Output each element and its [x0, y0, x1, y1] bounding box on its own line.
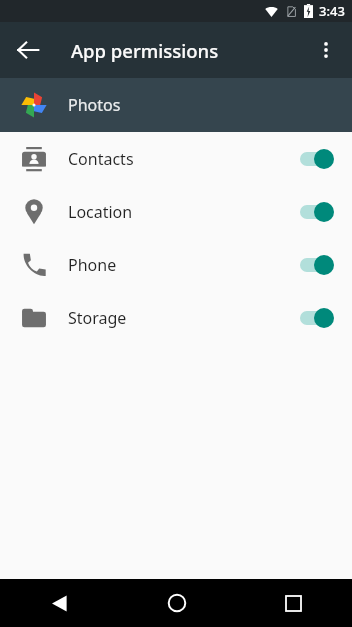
- button[interactable]: Recent apps: [235, 579, 352, 627]
- staticText: Phone: [68, 254, 294, 276]
- staticText: Photos: [68, 94, 121, 116]
- button[interactable]: Photos: [0, 78, 352, 132]
- staticText: Location: [68, 201, 294, 223]
- button[interactable]: Storage permission toggle: [294, 298, 338, 338]
- button[interactable]: Contacts: [0, 132, 352, 185]
- staticText: App permissions: [71, 38, 219, 63]
- button[interactable]: More options: [304, 28, 348, 72]
- button[interactable]: Back: [4, 26, 52, 74]
- staticText: Storage: [68, 307, 294, 329]
- button[interactable]: Phone: [0, 238, 352, 291]
- staticText: Contacts: [68, 148, 294, 170]
- button[interactable]: Location permission toggle: [294, 192, 338, 232]
- staticText: 3:43: [319, 2, 345, 20]
- button[interactable]: Phone permission toggle: [294, 245, 338, 285]
- button[interactable]: Location: [0, 185, 352, 238]
- button[interactable]: Back: [0, 579, 118, 627]
- button[interactable]: Contacts permission toggle: [294, 139, 338, 179]
- button[interactable]: Home: [118, 579, 235, 627]
- button[interactable]: Storage: [0, 291, 352, 344]
